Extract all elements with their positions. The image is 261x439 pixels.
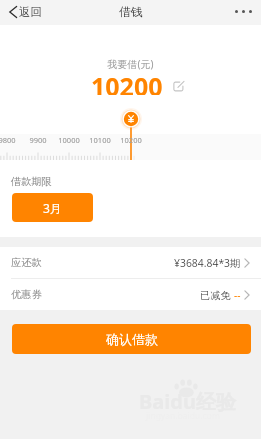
- staticText: 10100: [85, 135, 115, 145]
- staticText: 10200: [116, 135, 146, 145]
- button[interactable]: 3月: [12, 193, 93, 222]
- button[interactable]: Amount slider: [120, 108, 142, 130]
- staticText: 优惠券: [11, 288, 42, 301]
- staticText: 已减免: [200, 289, 231, 302]
- staticText: Baidu经验: [139, 388, 236, 415]
- staticText: 10200: [91, 69, 163, 95]
- staticText: 确认借款: [106, 331, 158, 347]
- staticText: 返回: [19, 5, 42, 19]
- button[interactable]: 返回: [0, 0, 48, 25]
- button[interactable]: 确认借款: [12, 324, 251, 354]
- staticText: 9800: [0, 135, 22, 145]
- staticText: ¥3684.84*3期: [174, 256, 241, 270]
- staticText: 3月: [43, 200, 62, 216]
- staticText: 应还款: [11, 256, 42, 269]
- staticText: 我要借(元): [0, 57, 261, 71]
- staticText: 10000: [54, 135, 84, 145]
- staticText: 9900: [23, 135, 53, 145]
- staticText: 借钱: [119, 4, 143, 19]
- button[interactable]: Edit amount: [173, 81, 184, 92]
- button[interactable]: 优惠券: [0, 279, 261, 310]
- button[interactable]: 应还款: [0, 247, 261, 278]
- staticText: --: [234, 288, 241, 302]
- staticText: 借款期限: [11, 175, 52, 188]
- button[interactable]: More options: [226, 0, 261, 25]
